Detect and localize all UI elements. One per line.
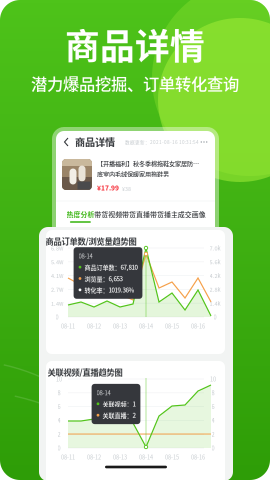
staticText: 关联直播：2 (102, 411, 135, 420)
staticText: 08-13 (113, 453, 127, 461)
staticText: 08-15 (165, 453, 179, 461)
staticText: 4 (57, 416, 60, 424)
staticText: 带货播主 (150, 209, 178, 219)
staticText: 08-11 (61, 322, 75, 330)
button[interactable]: Back (62, 135, 71, 149)
staticText: 8 (211, 389, 214, 397)
staticText: 5.4w (51, 258, 63, 266)
staticText: 转化率：1019.36% (84, 285, 134, 294)
staticText: 08-14 (139, 453, 153, 461)
staticText: 4 (211, 416, 214, 424)
staticText: ¥38 (122, 185, 131, 192)
button[interactable]: 成交画像 (178, 205, 205, 227)
staticText: 2 (57, 430, 60, 438)
staticText: 浏览量：6,653 (84, 274, 122, 283)
staticText: 关联视频：1 (102, 399, 135, 408)
staticText: 08-12 (87, 322, 101, 330)
button[interactable]: More (199, 137, 209, 147)
staticText: 7.0k (209, 244, 220, 252)
staticText: 1.4k (209, 299, 220, 307)
staticText: 成交画像 (178, 209, 205, 219)
staticText: 数据更新：2021-08-16 10:31:54 (125, 139, 199, 145)
staticText: 8 (57, 389, 60, 397)
staticText: 0 (57, 444, 60, 452)
button[interactable]: 带货视频 (94, 205, 122, 227)
staticText: 带货视频 (94, 209, 122, 219)
staticText: 6 (211, 402, 214, 411)
staticText: 08-16 (191, 322, 205, 330)
staticText: 08-16 (191, 453, 205, 461)
staticText: 08-14 (97, 388, 111, 397)
staticText: 潜力爆品挖掘、订单转化查询 (31, 71, 239, 95)
staticText: 【开播福利】秋冬季棉拖鞋女家居防滑厚 (97, 159, 204, 168)
staticText: 2 (211, 430, 214, 438)
staticText: 底室内毛绒保暖家用拖鞋男 (97, 169, 169, 178)
staticText: 08-13 (113, 322, 127, 330)
staticText: 商品订单数：67,810 (84, 263, 137, 272)
staticText: 4.2k (209, 271, 220, 280)
staticText: 6 (57, 402, 60, 411)
staticText: 关联视频/直播趋势图 (47, 366, 122, 378)
button[interactable]: 热度分析 (66, 205, 94, 227)
button[interactable]: 带货播主 (150, 205, 178, 227)
staticText: 5.6k (209, 258, 220, 266)
staticText: 10 (210, 375, 216, 383)
staticText: 0 (55, 313, 58, 321)
staticText: 商品订单数/浏览量趋势图 (45, 235, 136, 247)
staticText: 2.7w (51, 285, 63, 293)
staticText: 08-14 (79, 252, 93, 260)
staticText: 08-11 (61, 453, 75, 461)
staticText: 6.8w (51, 244, 63, 252)
staticText: 0 (211, 444, 214, 452)
staticText: 2.8k (209, 285, 220, 293)
staticText: 10 (56, 375, 62, 383)
staticText: 商品详情 (65, 19, 205, 69)
staticText: 0 (213, 313, 216, 321)
staticText: 热度分析 (66, 209, 94, 219)
staticText: 1.4w (51, 299, 63, 307)
staticText: 08-15 (165, 322, 179, 330)
button[interactable]: 带货直播 (122, 205, 150, 227)
staticText: 08-14 (139, 322, 153, 330)
staticText: 4.1w (51, 271, 63, 280)
staticText: 商品详情 (75, 135, 115, 149)
staticText: ¥17.99 (97, 183, 119, 192)
staticText: 带货直播 (122, 209, 150, 219)
staticText: 08-12 (87, 453, 101, 461)
